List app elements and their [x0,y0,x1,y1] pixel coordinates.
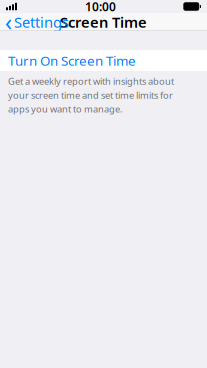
staticText: Screen Time [60,12,147,32]
staticText: Turn On Screen Time [8,52,136,69]
staticText: 10:00 [85,0,116,14]
staticText: Get a weekly report with insights about … [8,75,174,115]
staticText: Settings [14,12,69,32]
staticText: ‹ [5,7,12,37]
button[interactable]: Turn On Screen Time [0,50,207,71]
button[interactable]: ‹ [0,4,69,40]
